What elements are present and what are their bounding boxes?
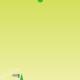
button[interactable]: Status (38, 0, 43, 2)
button[interactable]: Trail (0, 0, 80, 80)
